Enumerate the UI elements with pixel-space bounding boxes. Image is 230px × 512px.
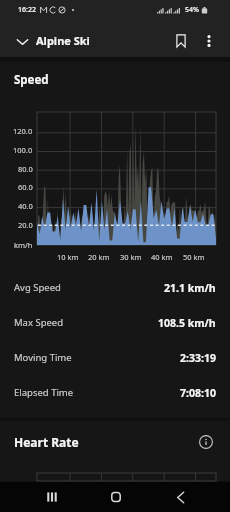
- button[interactable]: More options: [196, 28, 222, 54]
- button[interactable]: Max Speed: [0, 305, 230, 340]
- staticText: 21.1 km/h: [164, 281, 216, 295]
- staticText: 20.0: [18, 220, 33, 230]
- button[interactable]: Elapsed Time: [0, 375, 230, 410]
- button[interactable]: Back: [148, 482, 212, 512]
- staticText: Elapsed Time: [14, 386, 74, 399]
- staticText: 20 km: [88, 252, 110, 262]
- staticText: Avg Speed: [14, 281, 61, 294]
- staticText: km/h: [14, 240, 33, 250]
- staticText: 2:33:19: [180, 351, 216, 365]
- button[interactable]: Home: [84, 482, 148, 512]
- button[interactable]: Moving Time: [0, 340, 230, 375]
- staticText: Moving Time: [14, 351, 72, 364]
- staticText: 80.0: [18, 164, 33, 174]
- staticText: 40.0: [18, 201, 33, 211]
- button[interactable]: Avg Speed: [0, 270, 230, 305]
- staticText: 16:22: [18, 5, 36, 15]
- staticText: 54%: [185, 5, 199, 15]
- staticText: Alpine Ski: [36, 33, 90, 48]
- staticText: 108.5 km/h: [158, 316, 216, 330]
- staticText: Heart Rate: [14, 434, 79, 450]
- button[interactable]: Recents: [19, 482, 84, 512]
- staticText: 100.0: [13, 145, 33, 155]
- button[interactable]: Collapse: [9, 28, 35, 54]
- staticText: 120.0: [13, 126, 33, 136]
- staticText: 10 km: [57, 252, 79, 262]
- staticText: 50 km: [183, 252, 205, 262]
- button[interactable]: Bookmark: [168, 28, 194, 54]
- staticText: Speed: [14, 72, 49, 88]
- staticText: 30 km: [120, 252, 142, 262]
- staticText: 40 km: [151, 252, 173, 262]
- staticText: Max Speed: [14, 316, 64, 329]
- button[interactable]: Info: [196, 432, 216, 452]
- staticText: 60.0: [18, 182, 33, 192]
- staticText: 7:08:10: [180, 386, 216, 400]
